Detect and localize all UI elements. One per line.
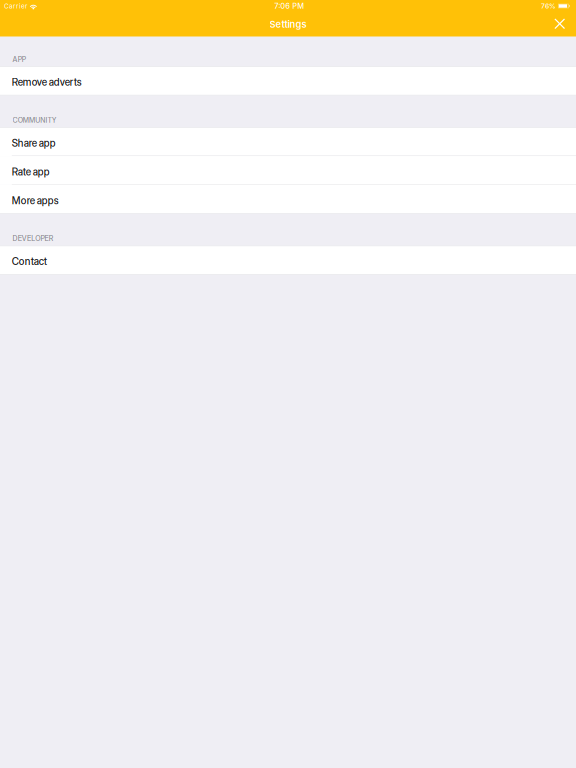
staticText: 7:06 PM (274, 1, 304, 10)
button[interactable]: Contact (0, 246, 576, 274)
staticText: Settings (269, 19, 306, 30)
staticText: 76% (541, 2, 556, 10)
button[interactable]: Rate app (0, 156, 576, 185)
staticText: More apps (12, 195, 59, 207)
button[interactable]: More apps (0, 185, 576, 214)
staticText: Share app (12, 137, 56, 149)
staticText: DEVELOPER (12, 234, 54, 243)
staticText: Carrier (4, 2, 27, 10)
button[interactable]: Share app (0, 127, 576, 156)
button[interactable]: Remove adverts (0, 66, 576, 95)
staticText: Rate app (12, 166, 50, 178)
staticText: COMMUNITY (12, 116, 57, 124)
staticText: Contact (12, 255, 47, 267)
staticText: Remove adverts (12, 76, 82, 88)
button[interactable]: Close (547, 12, 573, 36)
staticText: APP (12, 55, 26, 64)
